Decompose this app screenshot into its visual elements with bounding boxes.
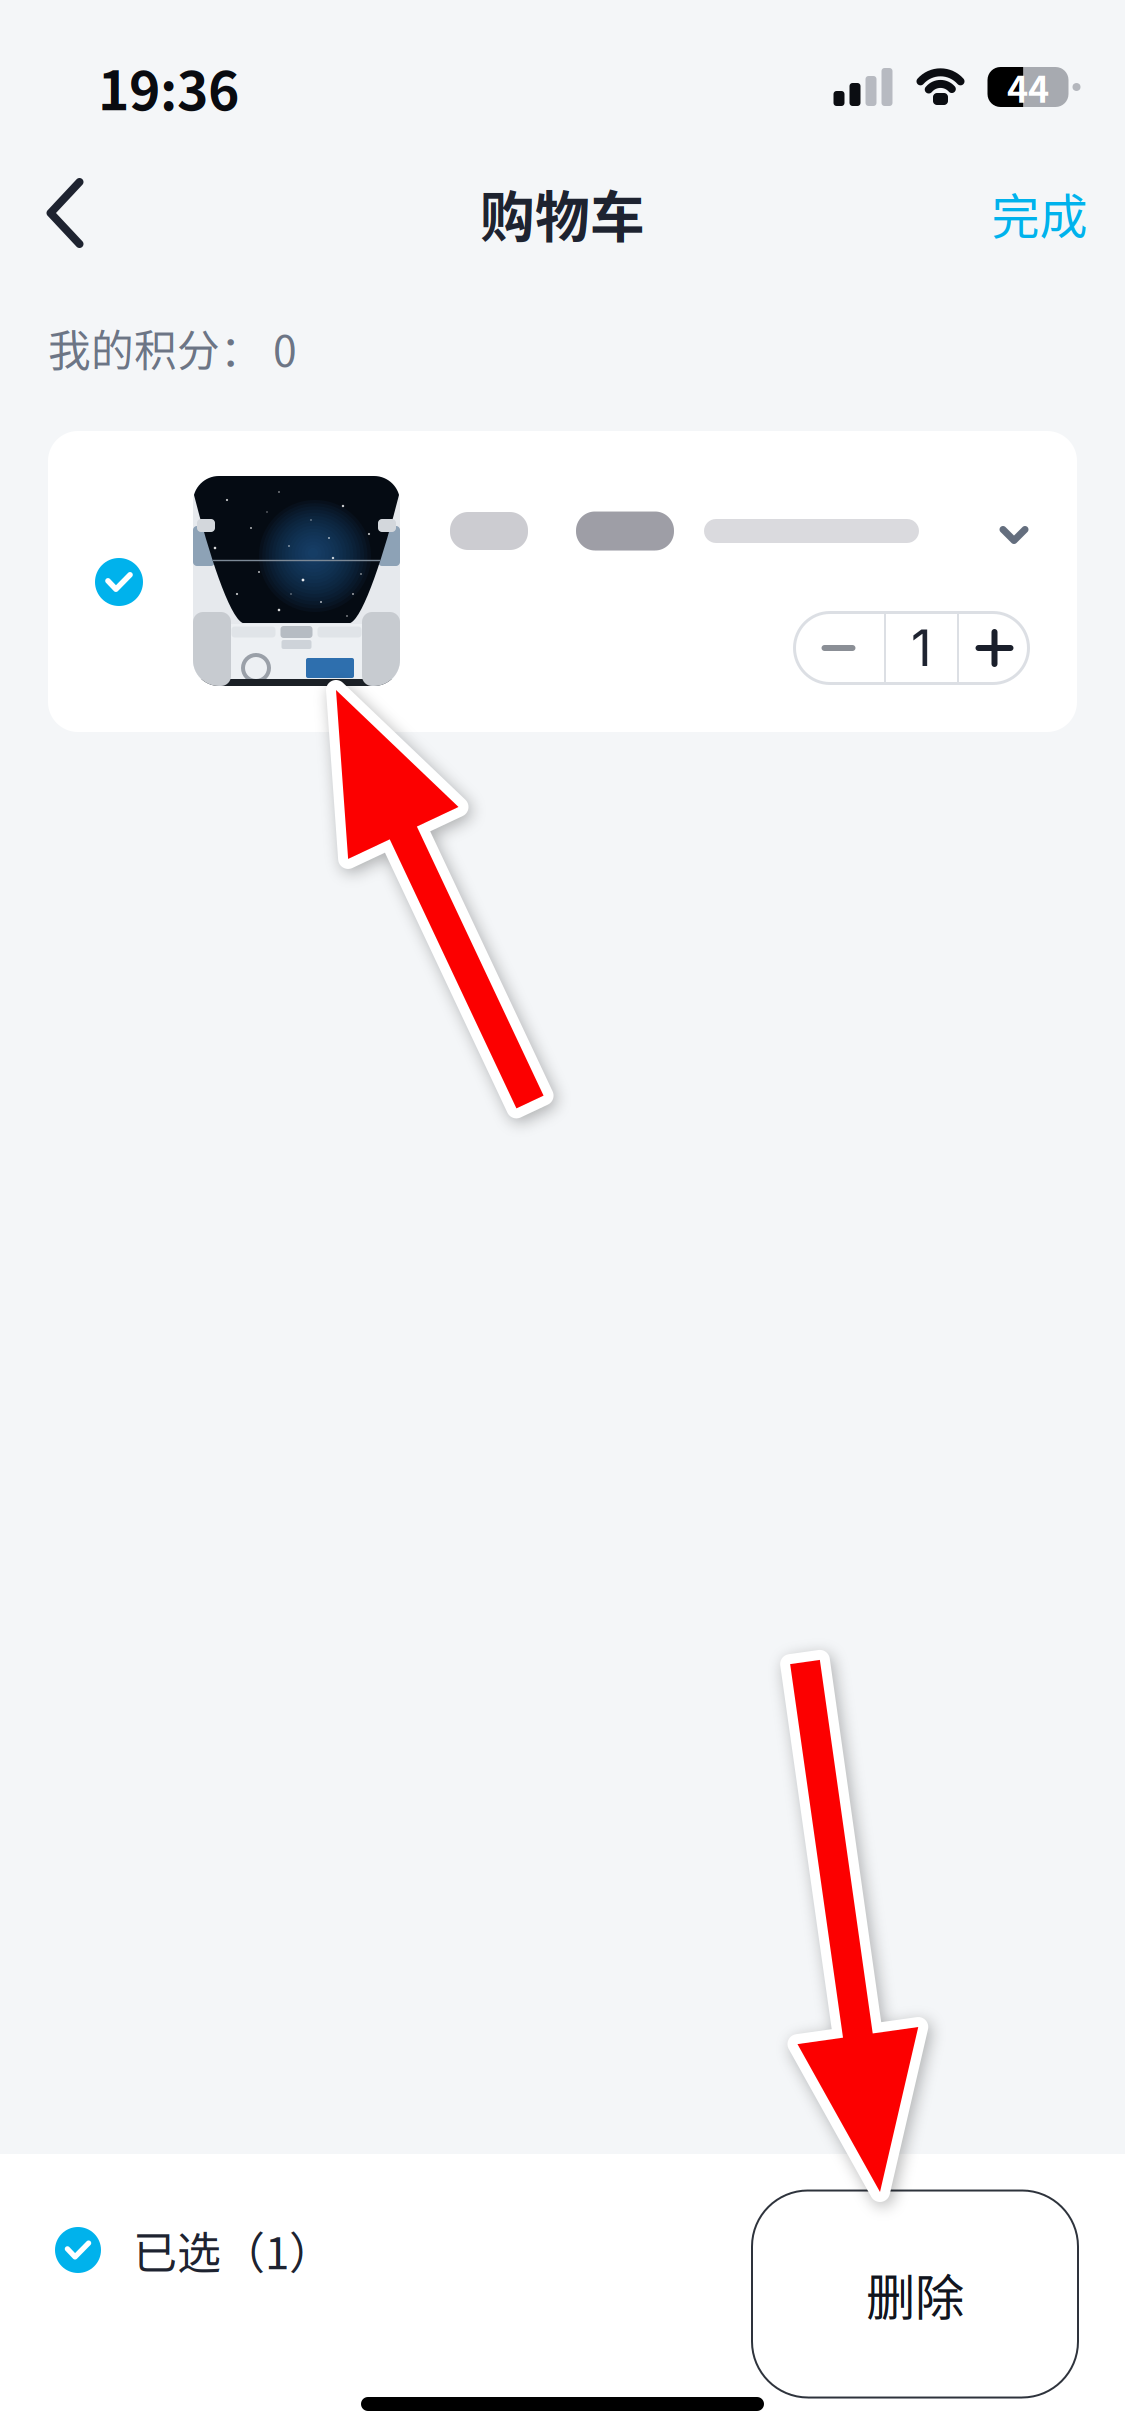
- button[interactable]: Back: [0, 148, 130, 278]
- staticText: 删除: [866, 2258, 964, 2330]
- staticText: 我的积分： 0: [48, 317, 297, 379]
- button[interactable]: Show specifications: [966, 487, 1062, 583]
- button[interactable]: 已选（1）: [37, 2192, 351, 2308]
- staticText: 44: [1007, 61, 1049, 113]
- staticText: 完成: [991, 178, 1087, 248]
- staticText: 购物车: [480, 173, 645, 253]
- staticText: 1: [911, 617, 932, 679]
- button[interactable]: Deselect item: [60, 523, 178, 641]
- button[interactable]: 完成: [954, 148, 1125, 278]
- button[interactable]: Increase quantity: [959, 611, 1030, 685]
- button[interactable]: 删除: [751, 2189, 1079, 2398]
- staticText: 19:36: [98, 48, 239, 126]
- staticText: 已选（1）: [133, 2218, 333, 2282]
- button[interactable]: Decrease quantity: [793, 611, 884, 685]
